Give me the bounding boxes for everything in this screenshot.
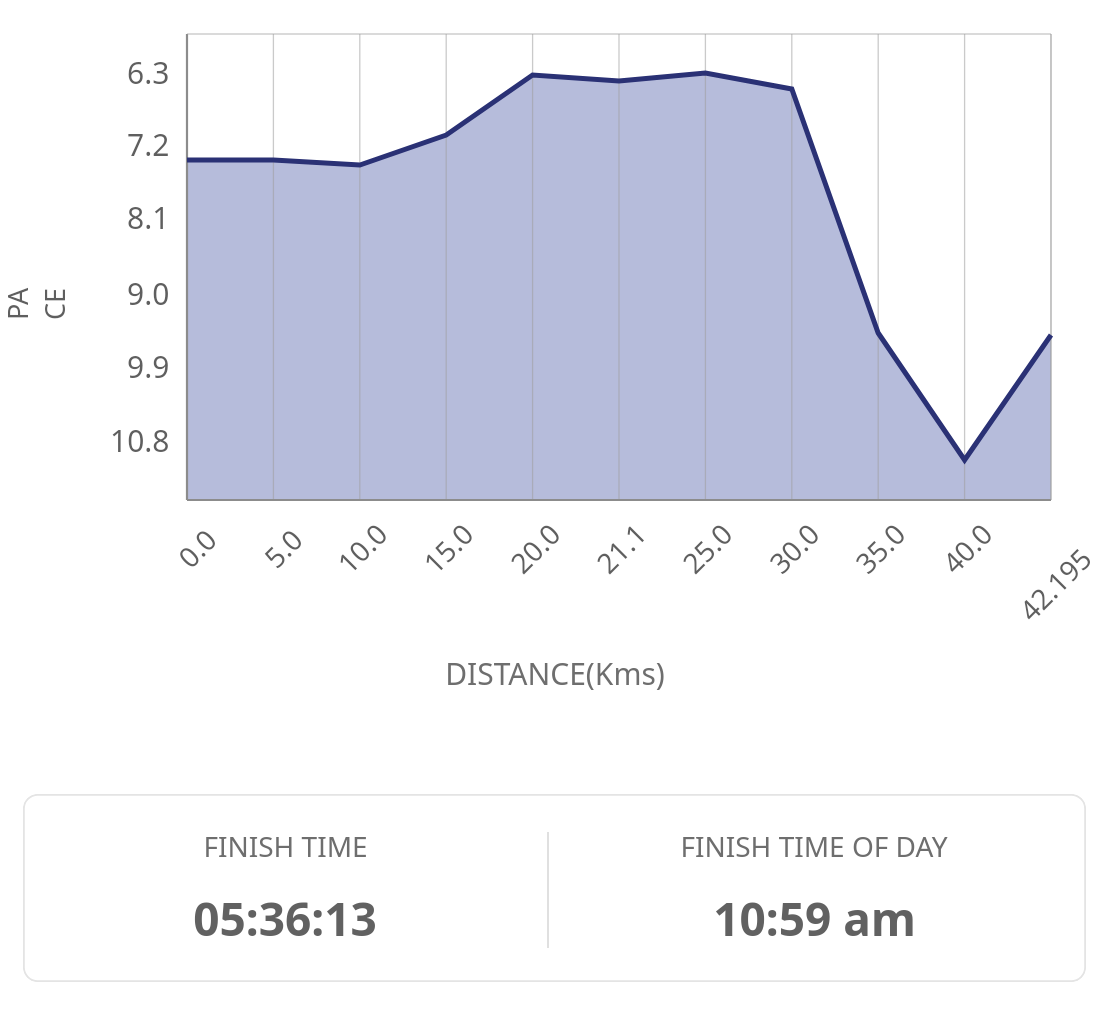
staticText: 7.2 — [127, 124, 170, 165]
staticText: 15.0 — [415, 515, 481, 581]
button[interactable]: FINISH TIME OF DAY — [549, 794, 1079, 982]
staticText: PACE — [0, 276, 73, 320]
staticText: 6.3 — [127, 52, 170, 93]
staticText: 20.0 — [502, 515, 568, 581]
staticText: 9.0 — [127, 273, 170, 314]
staticText: 21.1 — [588, 515, 654, 581]
staticText: 25.0 — [674, 515, 740, 581]
staticText: 8.1 — [127, 197, 170, 238]
staticText: 10:59 am — [713, 887, 916, 950]
staticText: 35.0 — [847, 515, 913, 581]
button[interactable]: FINISH TIME — [23, 794, 547, 982]
staticText: 0.0 — [169, 520, 225, 576]
staticText: 10.0 — [329, 515, 395, 581]
button[interactable]: Finish summary — [23, 794, 1086, 982]
staticText: 05:36:13 — [193, 887, 377, 950]
staticText: 40.0 — [934, 515, 1000, 581]
staticText: 10.8 — [110, 420, 170, 461]
staticText: FINISH TIME — [203, 827, 368, 865]
staticText: 5.0 — [255, 520, 311, 576]
staticText: 42.195 — [1010, 539, 1100, 629]
staticText: 9.9 — [127, 346, 170, 387]
staticText: FINISH TIME OF DAY — [680, 827, 948, 865]
staticText: DISTANCE(Kms) — [445, 653, 665, 694]
staticText: 30.0 — [761, 515, 827, 581]
